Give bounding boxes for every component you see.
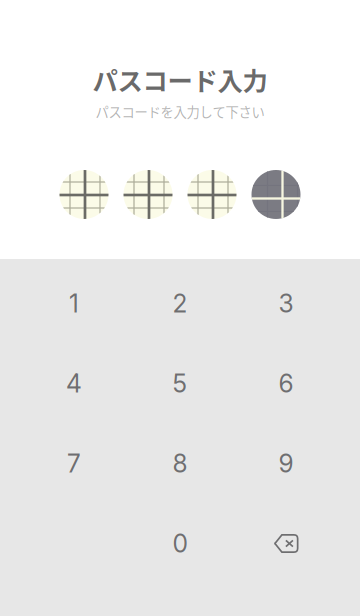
- staticText: 1: [69, 289, 79, 318]
- button[interactable]: 7: [21, 423, 127, 503]
- staticText: パスコードを入力して下さい: [95, 102, 264, 121]
- button[interactable]: 9: [233, 423, 339, 503]
- button[interactable]: Delete: [233, 503, 339, 583]
- staticText: パスコード入力: [92, 61, 267, 98]
- button[interactable]: 3: [233, 263, 339, 343]
- button[interactable]: 6: [233, 343, 339, 423]
- button[interactable]: 0: [127, 503, 233, 583]
- staticText: 3: [278, 289, 293, 318]
- button[interactable]: 8: [127, 423, 233, 503]
- staticText: 7: [67, 449, 81, 478]
- staticText: 9: [278, 449, 293, 478]
- staticText: 2: [172, 289, 187, 318]
- button[interactable]: 5: [127, 343, 233, 423]
- button[interactable]: 1: [21, 263, 127, 343]
- staticText: 5: [172, 369, 187, 398]
- button[interactable]: 4: [21, 343, 127, 423]
- staticText: 0: [172, 529, 187, 558]
- staticText: 6: [278, 369, 293, 398]
- staticText: 8: [172, 449, 187, 478]
- staticText: 4: [66, 369, 82, 398]
- button[interactable]: 2: [127, 263, 233, 343]
